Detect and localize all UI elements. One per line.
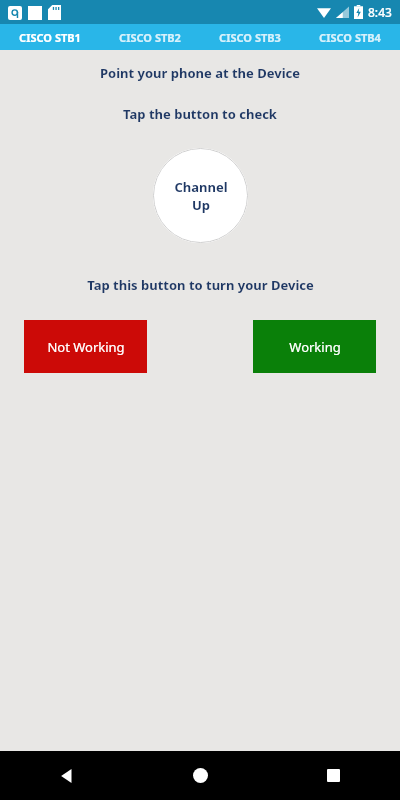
staticText: CISCO STB4 — [319, 30, 381, 45]
staticText: CISCO STB1 — [19, 30, 81, 45]
staticText: CISCO STB3 — [219, 30, 281, 45]
button[interactable]: Not Working — [24, 320, 147, 373]
button[interactable]: Home — [134, 751, 267, 800]
staticText: Not Working — [47, 338, 125, 356]
button[interactable]: CISCO STB2 — [100, 24, 200, 50]
button[interactable]: Channel Up — [153, 148, 248, 243]
button[interactable]: Recent apps — [267, 751, 400, 800]
staticText: Tap the button to check — [123, 105, 277, 123]
button[interactable]: Working — [253, 320, 376, 373]
staticText: 8:43 — [368, 4, 392, 20]
staticText: CISCO STB2 — [119, 30, 181, 45]
button[interactable]: Back — [0, 751, 134, 800]
staticText: Channel Up — [174, 178, 228, 214]
button[interactable]: CISCO STB3 — [200, 24, 300, 50]
staticText: Tap this button to turn your Device — [87, 276, 314, 294]
button[interactable]: CISCO STB1 — [0, 24, 100, 50]
staticText: Point your phone at the Device — [100, 64, 300, 82]
button[interactable]: CISCO STB4 — [300, 24, 400, 50]
staticText: Working — [289, 338, 341, 356]
